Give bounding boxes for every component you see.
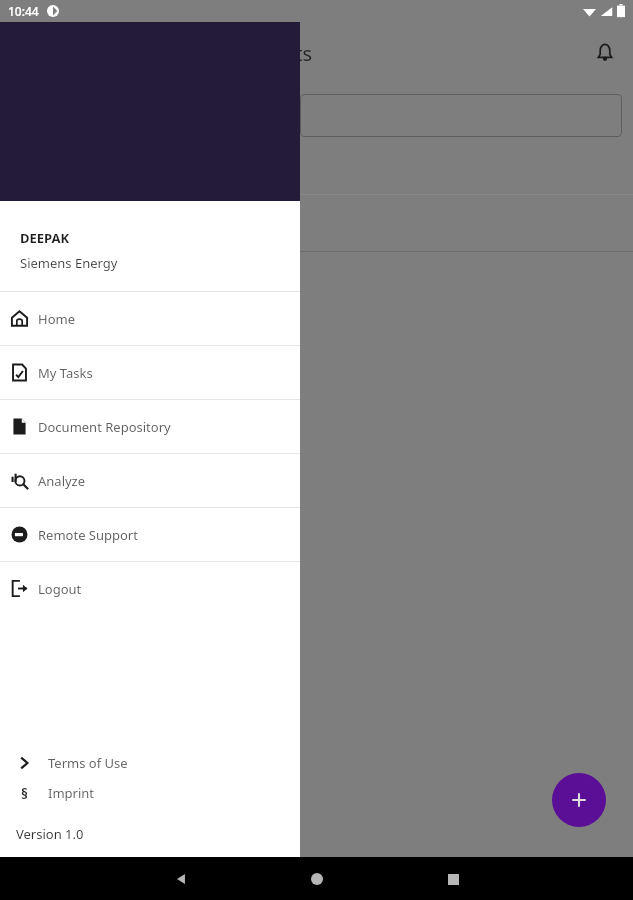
button[interactable]: Document Repository — [0, 400, 300, 453]
button[interactable]: Remote Support — [0, 508, 300, 561]
button[interactable]: Recent apps — [433, 859, 473, 899]
staticText: Analyze — [38, 472, 86, 490]
button[interactable]: Notifications — [585, 33, 625, 73]
button[interactable]: Home — [0, 292, 300, 345]
staticText: DEEPAK — [20, 229, 70, 247]
staticText: Logout — [38, 580, 82, 598]
staticText: Siemens Energy — [20, 254, 118, 272]
staticText: Home — [38, 310, 75, 328]
staticText: Assets — [252, 40, 313, 67]
staticText: Version 1.0 — [16, 825, 84, 843]
button[interactable]: Add asset — [552, 773, 606, 827]
staticText: § — [21, 784, 28, 803]
button[interactable]: DEEPAK — [0, 201, 300, 291]
staticText: Imprint — [48, 784, 95, 802]
button[interactable]: Analyze — [0, 454, 300, 507]
button[interactable]: Back — [161, 859, 201, 899]
button[interactable]: My Tasks — [0, 346, 300, 399]
staticText: Terms of Use — [48, 754, 128, 772]
staticText: Remote Support — [38, 526, 138, 544]
staticText: My Tasks — [38, 364, 93, 382]
button[interactable]: Home — [297, 859, 337, 899]
staticText: 10:44 — [8, 3, 39, 19]
button[interactable]: § — [0, 778, 300, 808]
button[interactable]: Logout — [0, 562, 300, 615]
button[interactable]: Terms of Use — [0, 748, 300, 778]
staticText: Document Repository — [38, 418, 171, 436]
button[interactable] — [300, 94, 622, 137]
